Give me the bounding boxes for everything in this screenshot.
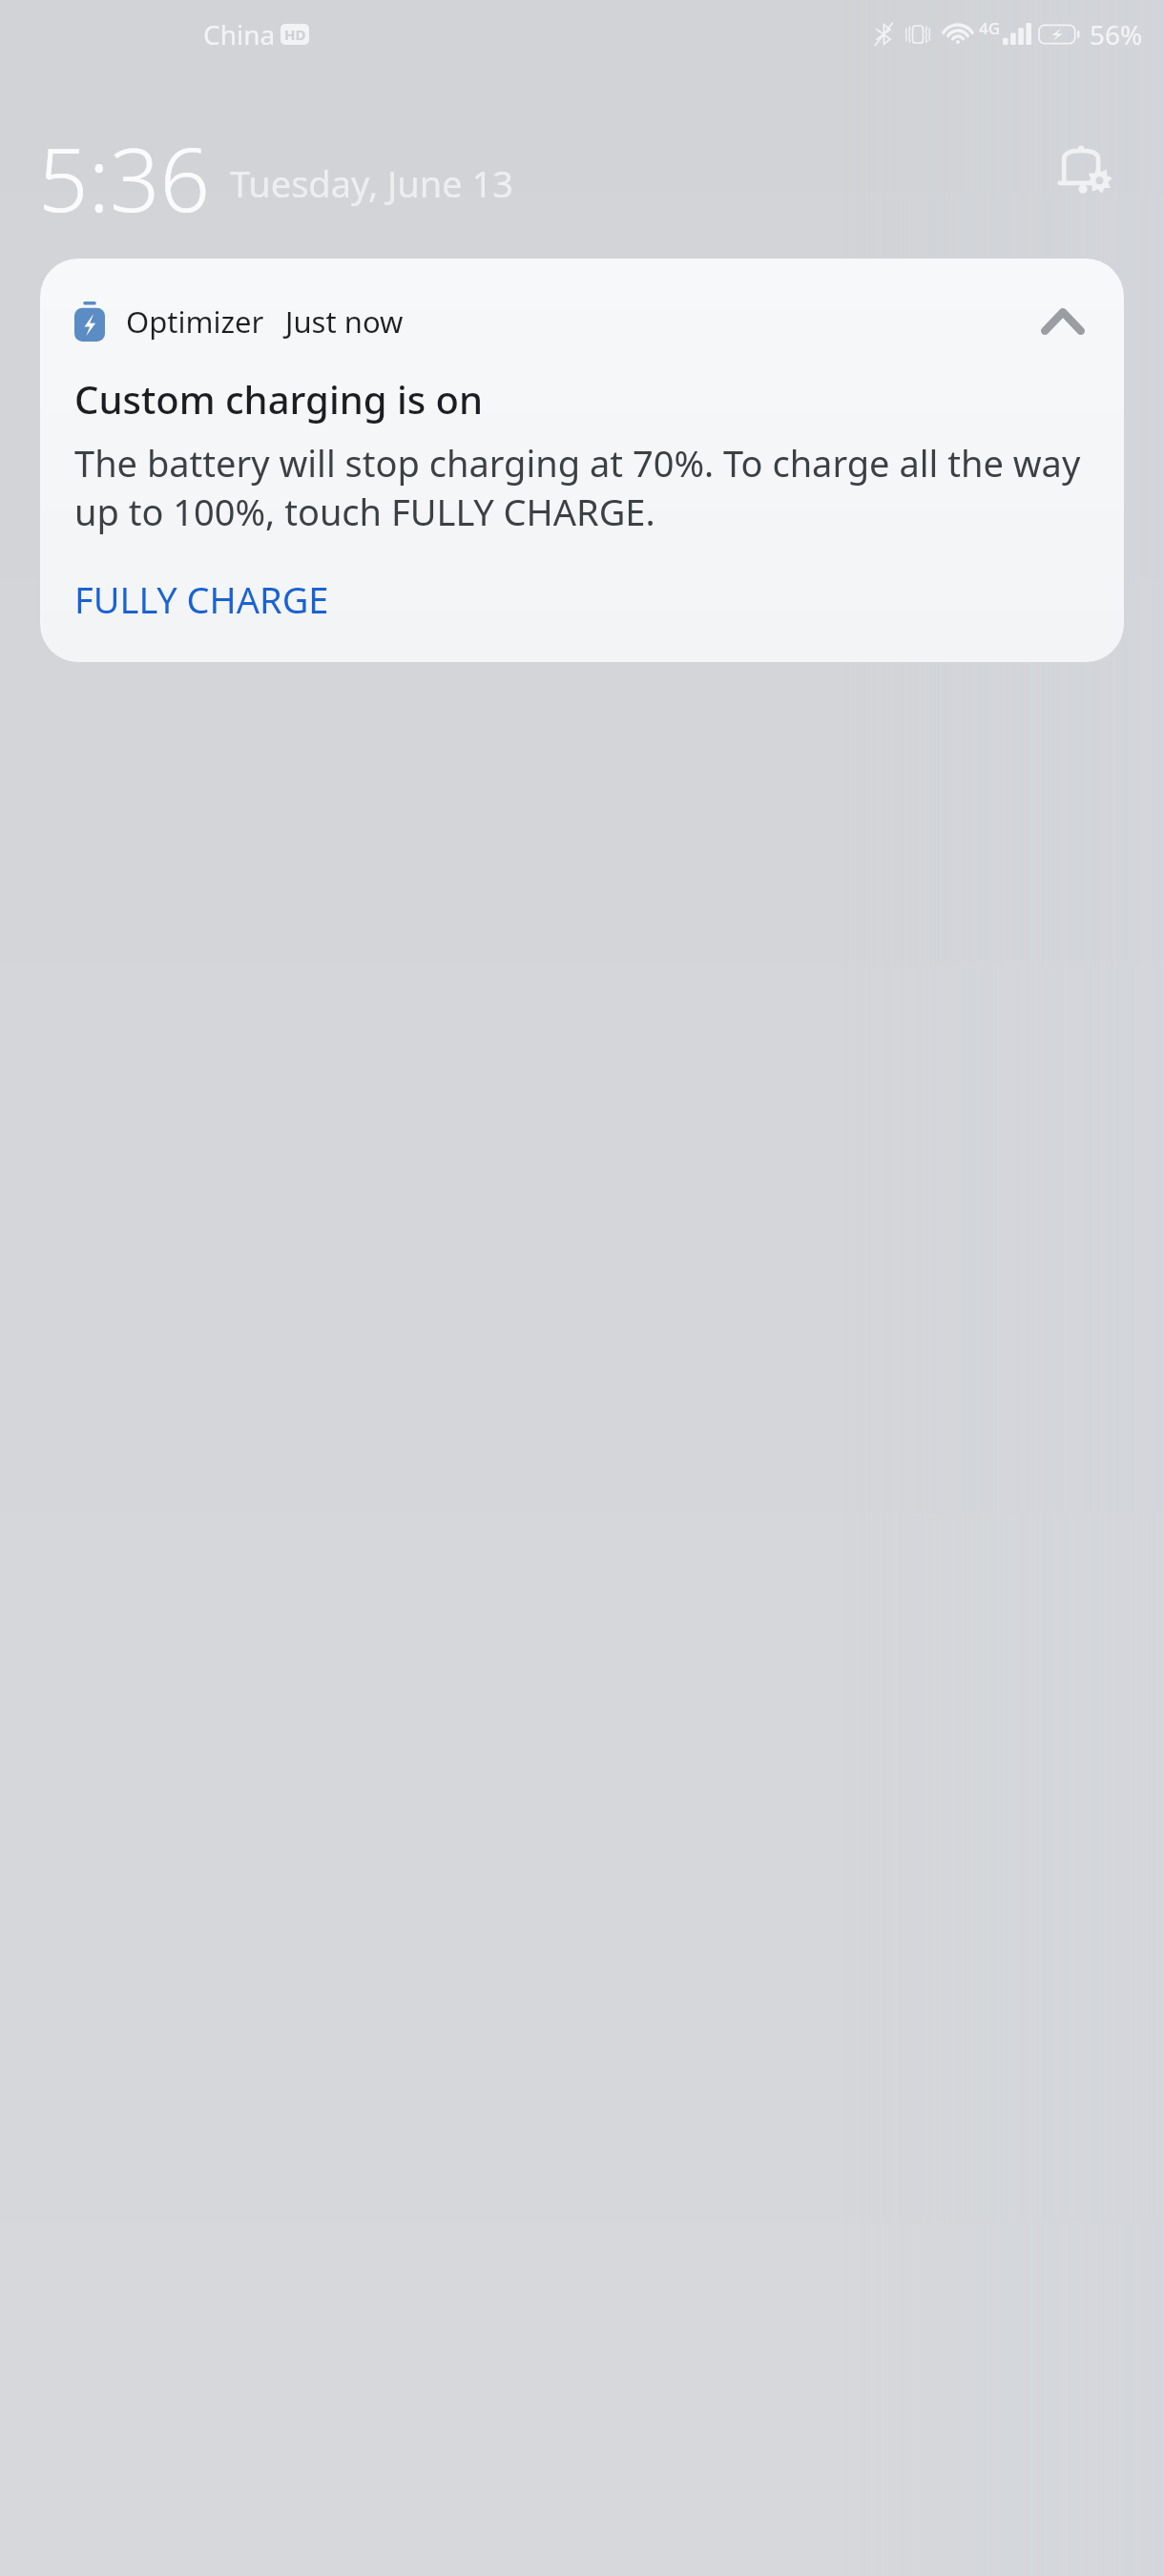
button[interactable]: FULLY CHARGE	[59, 561, 344, 637]
button[interactable]: Collapse notification	[1029, 287, 1097, 356]
staticText: 4G	[979, 17, 1001, 39]
staticText: China	[203, 16, 276, 52]
staticText: HD	[284, 25, 306, 44]
staticText: 56%	[1090, 16, 1143, 52]
staticText: FULLY CHARGE	[74, 574, 329, 624]
staticText: Optimizer	[126, 301, 264, 342]
staticText: Just now	[285, 301, 404, 342]
staticText: Tuesday, June 13	[230, 158, 514, 208]
staticText: Custom charging is on	[74, 373, 484, 425]
button[interactable]: Notification settings	[1044, 130, 1126, 212]
button[interactable]: Optimizer	[40, 259, 1124, 662]
staticText: The battery will stop charging at 70%. T…	[74, 438, 1101, 536]
staticText: 5:36	[38, 118, 211, 223]
